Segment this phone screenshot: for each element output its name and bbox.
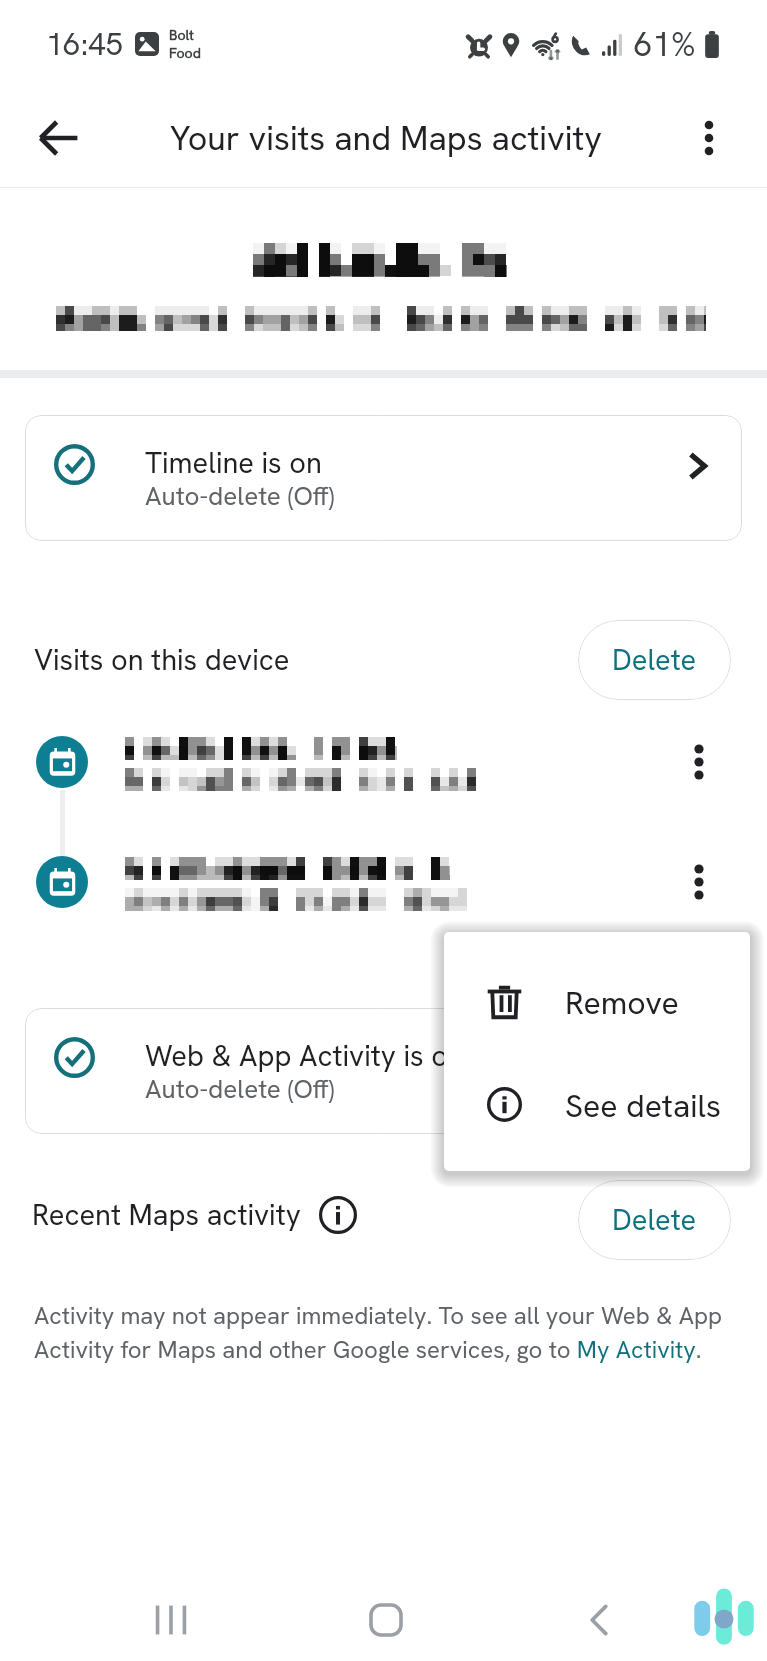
button[interactable]: Delete [578, 1180, 731, 1260]
staticText: 16:45 [46, 24, 123, 64]
button[interactable]: Delete [578, 620, 731, 700]
button[interactable]: Timeline is on [25, 415, 742, 541]
button[interactable]: Visit options [664, 847, 734, 917]
staticText: Visits on this device [34, 641, 290, 679]
staticText: Recent Maps activity [32, 1196, 301, 1234]
staticText: 61% [634, 23, 696, 66]
staticText: Delete [612, 641, 697, 679]
button[interactable]: Home [346, 1580, 426, 1660]
staticText: See details [565, 1085, 721, 1127]
button[interactable]: More options [672, 101, 746, 175]
button[interactable]: Visit options [0, 720, 767, 820]
staticText: Web & App Activity is on [145, 1037, 464, 1075]
button[interactable]: Back [22, 101, 96, 175]
staticText: Timeline is on [145, 444, 322, 482]
staticText: Delete [612, 1201, 697, 1239]
button[interactable]: Web & App Activity is on [25, 1008, 742, 1134]
staticText: Auto-delete (Off) [145, 479, 335, 513]
button[interactable]: Remove [444, 950, 750, 1053]
button[interactable]: Visit options [0, 840, 767, 940]
staticText: Food [169, 44, 201, 62]
button[interactable]: Info about recent Maps activity [315, 1192, 361, 1238]
button[interactable]: Visit options [664, 727, 734, 797]
button[interactable]: Back [559, 1580, 639, 1660]
staticText: Bolt [169, 26, 194, 44]
staticText: Remove [565, 982, 679, 1024]
staticText: Your visits and Maps activity [170, 116, 602, 160]
staticText: Activity may not appear immediately. To … [34, 1300, 734, 1365]
button[interactable]: Recent apps [131, 1580, 211, 1660]
button[interactable]: See details [444, 1053, 750, 1156]
staticText: Auto-delete (Off) [145, 1072, 335, 1106]
